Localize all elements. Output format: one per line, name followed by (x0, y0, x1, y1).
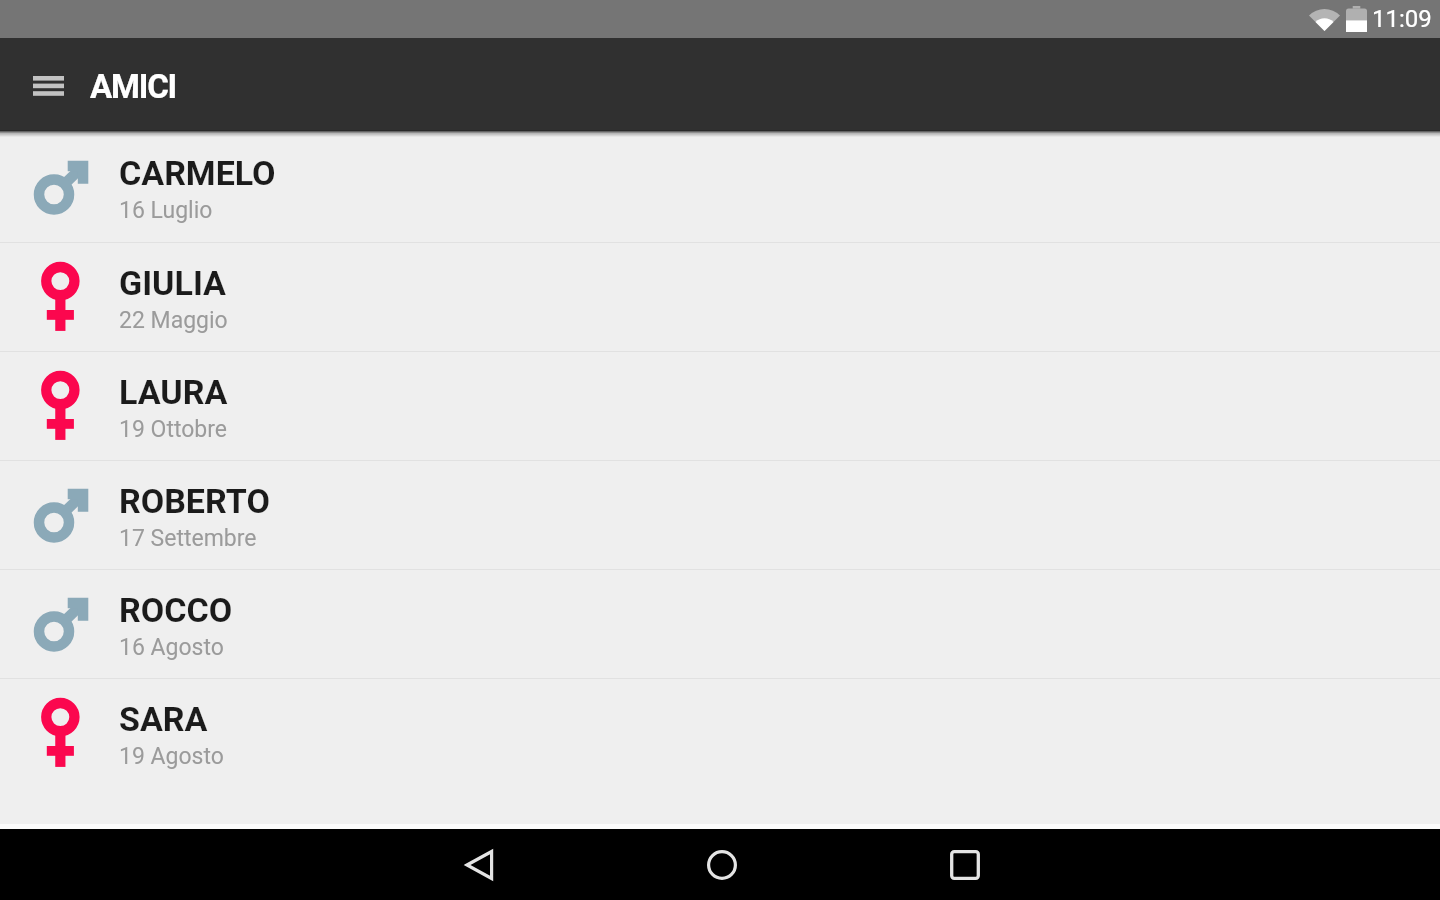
staticText: 22 Maggio (119, 307, 228, 334)
staticText: CARMELO (119, 153, 276, 193)
button[interactable]: Home (687, 830, 757, 900)
button[interactable]: LAURA (0, 352, 1440, 461)
button[interactable]: Recent apps (930, 830, 1000, 900)
staticText: 16 Luglio (119, 197, 213, 224)
staticText: SARA (119, 699, 208, 739)
button[interactable]: GIULIA (0, 243, 1440, 352)
button[interactable]: Open navigation drawer (16, 52, 80, 116)
staticText: 16 Agosto (119, 634, 224, 661)
button[interactable]: SARA (0, 679, 1440, 787)
staticText: 11:09 (1372, 5, 1432, 33)
staticText: AMICI (90, 67, 177, 106)
button[interactable]: CARMELO (0, 132, 1440, 243)
button[interactable]: ROCCO (0, 570, 1440, 679)
staticText: 19 Ottobre (119, 416, 228, 443)
button[interactable]: ROBERTO (0, 461, 1440, 570)
staticText: 17 Settembre (119, 525, 257, 552)
button[interactable]: Back (444, 830, 514, 900)
staticText: ROBERTO (119, 481, 270, 521)
staticText: ROCCO (119, 590, 233, 630)
staticText: 19 Agosto (119, 743, 224, 770)
staticText: LAURA (119, 372, 228, 412)
staticText: GIULIA (119, 263, 226, 303)
